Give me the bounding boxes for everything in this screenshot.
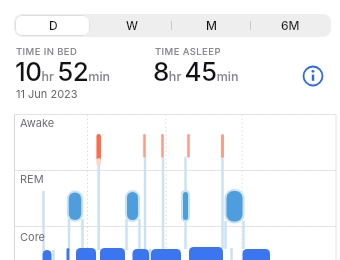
button[interactable] (302, 65, 324, 87)
staticText: D (49, 18, 58, 33)
button[interactable]: M (172, 14, 251, 37)
staticText: M (206, 18, 217, 33)
staticText: REM (20, 172, 44, 185)
staticText: 6M (281, 18, 300, 33)
button[interactable]: 6M (251, 14, 330, 37)
button[interactable]: D (14, 14, 93, 37)
staticText: 11 Jun 2023 (16, 87, 78, 100)
staticText: 10hr 52min (15, 56, 111, 87)
button[interactable]: W (93, 14, 172, 37)
staticText: Core (20, 230, 46, 243)
staticText: Awake (20, 116, 55, 129)
staticText: 8hr 45min (153, 56, 239, 87)
staticText: TIME IN BED (16, 46, 78, 57)
staticText: TIME ASLEEP (155, 46, 221, 57)
staticText: W (126, 18, 139, 33)
